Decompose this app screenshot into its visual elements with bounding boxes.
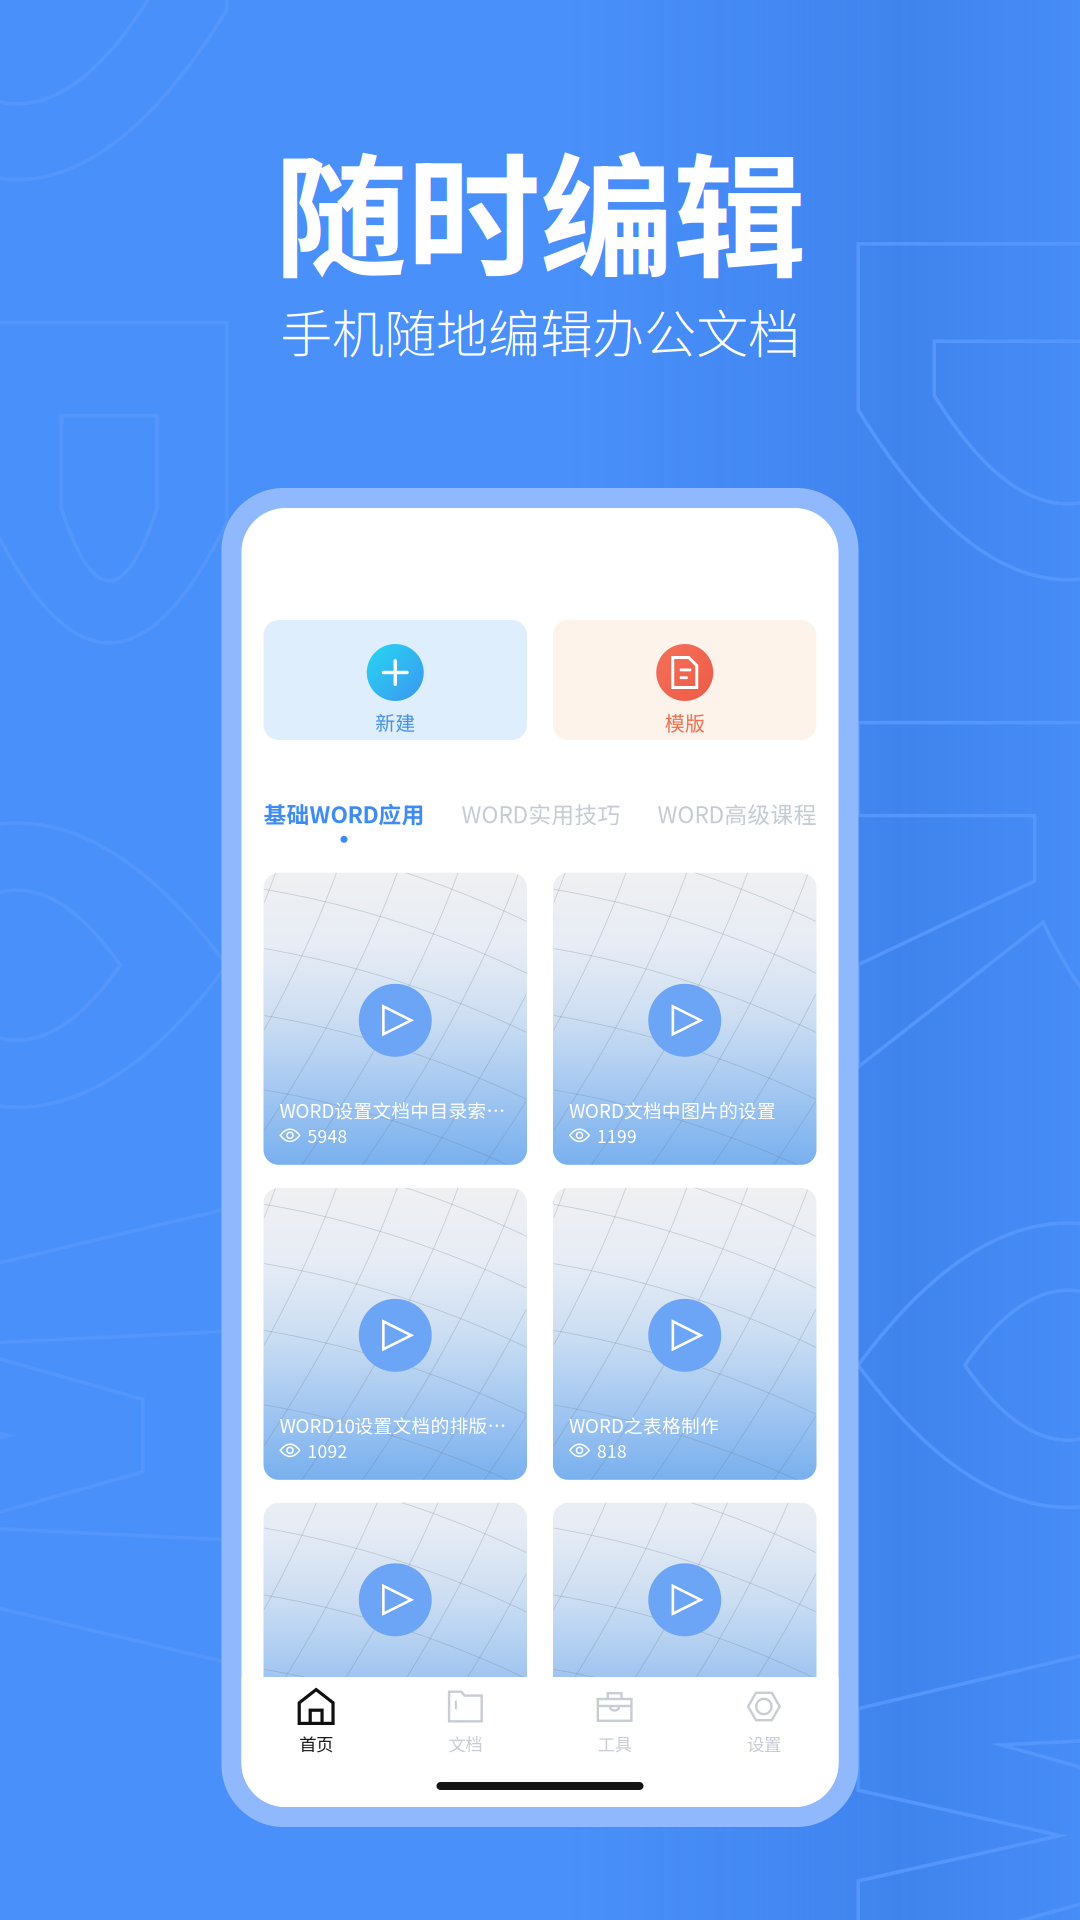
staticText: 文档 (448, 1731, 482, 1756)
staticText: 模版 (665, 707, 705, 736)
staticText: 随时编辑 (274, 111, 806, 305)
button[interactable]: 设置 (689, 1688, 838, 1756)
staticText: 手机随地编辑办公文档 (280, 293, 800, 368)
button[interactable]: WORD10设置文档的排版… (263, 1188, 527, 1480)
staticText: 设置 (747, 1731, 781, 1756)
button[interactable]: WORD设置文档中目录索… (263, 873, 527, 1165)
staticText: 1199 (597, 1123, 637, 1148)
staticText: WORD之表格制作 (569, 1411, 719, 1438)
staticText: 新建 (375, 707, 415, 736)
staticText: 首页 (299, 1731, 333, 1756)
staticText: WORD实用技巧 (461, 797, 620, 830)
staticText: 1092 (307, 1438, 347, 1463)
button[interactable]: 新建 (263, 620, 527, 740)
staticText: 工具 (598, 1731, 632, 1756)
staticText: WORD10设置文档的排版… (279, 1411, 506, 1438)
staticText: WORD高级课程 (657, 797, 816, 830)
staticText: 818 (597, 1438, 627, 1463)
staticText: WORD文档中图片的设置 (569, 1096, 776, 1123)
button[interactable]: 文档 (391, 1688, 540, 1756)
button[interactable]: 首页 (241, 1688, 391, 1756)
button[interactable]: WORD实用技巧 (461, 797, 620, 843)
button[interactable]: WORD文档中图片的设置 (553, 873, 816, 1165)
staticText: 5948 (307, 1123, 347, 1148)
button[interactable] (263, 1503, 527, 1694)
button[interactable] (553, 1503, 816, 1694)
button[interactable]: 基础WORD应用 (263, 797, 424, 843)
button[interactable]: WORD高级课程 (657, 797, 816, 843)
button[interactable]: WORD之表格制作 (553, 1188, 816, 1480)
staticText: WORD设置文档中目录索… (279, 1096, 505, 1123)
button[interactable]: 模版 (553, 620, 816, 740)
button[interactable]: 工具 (540, 1688, 689, 1756)
staticText: 基础WORD应用 (263, 797, 424, 830)
